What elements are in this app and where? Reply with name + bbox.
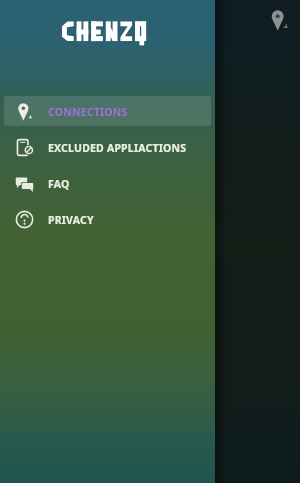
staticText: CONNECTIONS — [48, 105, 128, 119]
button[interactable]: Location — [268, 9, 290, 31]
button[interactable]: FAQ — [4, 168, 211, 198]
staticText: FAQ — [48, 177, 70, 191]
staticText: EXCLUDED APPLIACTIONS — [48, 141, 187, 155]
staticText: PRIVACY — [48, 213, 94, 227]
button[interactable]: EXCLUDED APPLIACTIONS — [4, 132, 211, 162]
button[interactable]: PRIVACY — [4, 204, 211, 234]
button[interactable]: CONNECTIONS — [4, 96, 211, 126]
